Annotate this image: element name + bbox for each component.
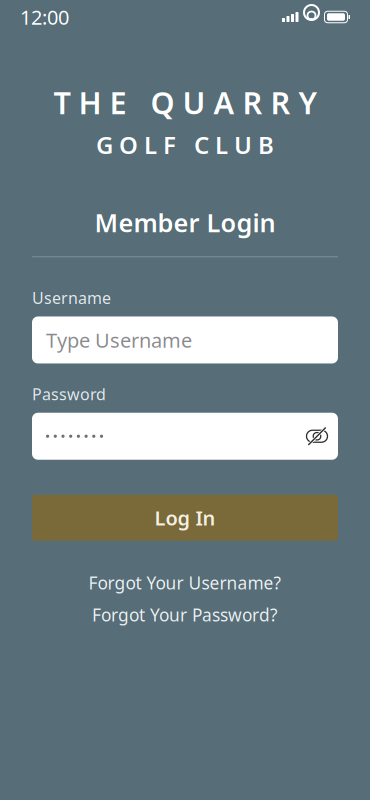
staticText: T H E Q U A R R Y bbox=[53, 82, 316, 123]
staticText: Forgot Your Username? bbox=[88, 571, 281, 594]
button[interactable]: Forgot Your Password? bbox=[32, 605, 338, 625]
staticText: Log In bbox=[154, 504, 215, 531]
staticText: 12:00 bbox=[20, 4, 69, 30]
staticText: Type Username bbox=[46, 327, 192, 353]
staticText: Forgot Your Password? bbox=[92, 603, 278, 626]
button[interactable]: Forgot Your Username? bbox=[32, 573, 338, 593]
staticText: G O L F C L U B bbox=[96, 129, 274, 161]
button[interactable]: Log In bbox=[32, 495, 338, 541]
staticText: Password bbox=[32, 383, 106, 405]
staticText: Username bbox=[32, 287, 111, 308]
button[interactable]: Show password bbox=[296, 413, 338, 460]
staticText: Member Login bbox=[94, 206, 275, 239]
